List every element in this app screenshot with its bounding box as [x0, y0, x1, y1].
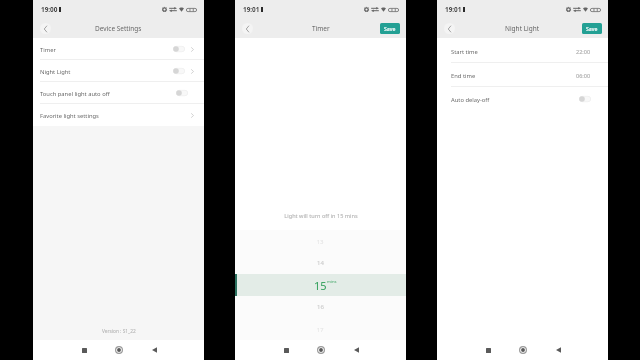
- button[interactable]: Back: [242, 23, 253, 34]
- button[interactable]: Back: [145, 341, 163, 359]
- button[interactable]: Save: [582, 23, 602, 34]
- staticText: Start time: [451, 48, 478, 56]
- button[interactable]: Auto delay-off: [437, 87, 608, 111]
- button[interactable]: Timer: [33, 38, 204, 60]
- button[interactable]: 15: [235, 274, 406, 296]
- staticText: 19:01: [445, 5, 462, 14]
- staticText: Version : S1_22: [102, 328, 136, 335]
- button[interactable]: Save: [380, 23, 400, 34]
- staticText: Save: [384, 25, 396, 32]
- staticText: 15: [314, 278, 327, 293]
- staticText: End time: [451, 72, 476, 80]
- staticText: 06:00: [576, 72, 591, 79]
- staticText: 14: [317, 259, 324, 267]
- button[interactable]: Back: [40, 23, 51, 34]
- staticText: Device Settings: [95, 24, 142, 33]
- button[interactable]: Night Light: [33, 60, 204, 82]
- staticText: Night Light: [505, 24, 540, 33]
- button[interactable]: Back: [347, 341, 365, 359]
- button[interactable]: Recents: [277, 341, 295, 359]
- staticText: 13: [317, 238, 324, 245]
- staticText: 17: [317, 326, 324, 333]
- staticText: Timer: [312, 24, 330, 33]
- staticText: 22:00: [576, 48, 591, 55]
- button[interactable]: End time: [437, 63, 608, 87]
- staticText: Touch panel light auto off: [40, 90, 110, 98]
- button[interactable]: Recents: [75, 341, 93, 359]
- staticText: Auto delay-off: [451, 96, 490, 104]
- button[interactable]: Home: [312, 341, 330, 359]
- staticText: Timer: [40, 46, 56, 54]
- button[interactable]: Back: [549, 341, 567, 359]
- button[interactable]: Home: [110, 341, 128, 359]
- button[interactable]: Start time: [437, 39, 608, 63]
- staticText: mins: [327, 279, 337, 285]
- staticText: 19:01: [243, 5, 260, 14]
- staticText: Save: [586, 25, 598, 32]
- staticText: 16: [317, 303, 324, 311]
- staticText: Light will turn off in 15 mins: [284, 212, 358, 220]
- button[interactable]: Recents: [479, 341, 497, 359]
- staticText: Night Light: [40, 68, 71, 76]
- button[interactable]: Favorite light settings: [33, 104, 204, 126]
- button[interactable]: Back: [444, 23, 455, 34]
- staticText: 19:00: [41, 5, 58, 14]
- button[interactable]: Home: [514, 341, 532, 359]
- button[interactable]: Touch panel light auto off: [33, 82, 204, 104]
- staticText: Favorite light settings: [40, 112, 99, 120]
